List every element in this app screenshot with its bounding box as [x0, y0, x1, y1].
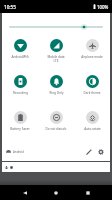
- button[interactable]: Recording: [2, 73, 38, 109]
- button[interactable]: Edit tiles: [83, 146, 95, 158]
- staticText: Ring Only: [49, 91, 64, 95]
- staticText: Auto-rotate: [84, 127, 101, 131]
- staticText: 10:55: [4, 4, 16, 10]
- staticText: Android: [13, 150, 24, 154]
- staticText: Recording: [13, 91, 28, 95]
- button[interactable]: AndroidWifi: [2, 37, 38, 73]
- button[interactable]: Home: [48, 185, 63, 200]
- staticText: 100%: [97, 4, 109, 10]
- button[interactable]: Back: [17, 185, 32, 200]
- button[interactable]: Airplane mode: [74, 37, 110, 73]
- staticText: Battery Saver: [10, 127, 30, 131]
- staticText: Do not disturb: [45, 127, 67, 131]
- button[interactable]: Do not disturb: [38, 109, 74, 145]
- button[interactable]: Mobile data LTE: [38, 37, 74, 73]
- staticText: Mobile data LTE: [47, 55, 65, 63]
- staticText: AndroidWifi: [11, 55, 29, 59]
- staticText: Airplane mode: [81, 55, 103, 59]
- button[interactable]: Dark theme: [74, 73, 110, 109]
- button[interactable]: Recent apps: [80, 185, 95, 200]
- button[interactable]: Ring Only: [38, 73, 74, 109]
- button[interactable]: Auto-rotate: [74, 109, 110, 145]
- staticText: Dark theme: [83, 91, 101, 95]
- button[interactable]: Settings: [95, 146, 107, 158]
- button[interactable]: Battery Saver: [2, 109, 38, 145]
